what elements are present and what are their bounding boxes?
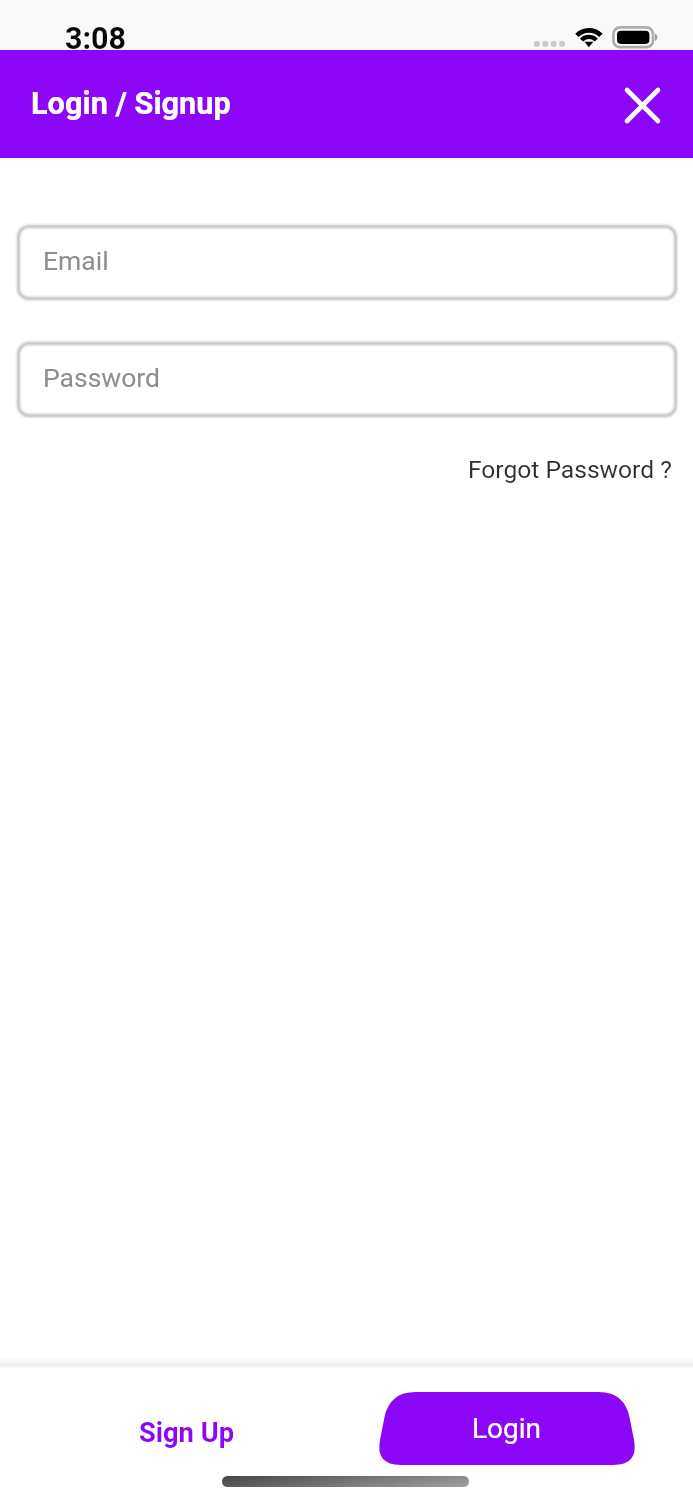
button[interactable]: Login: [375, 1392, 639, 1465]
staticText: 3:08: [65, 21, 127, 57]
button[interactable]: Sign Up: [123, 1406, 251, 1460]
button[interactable]: Email: [14, 222, 680, 303]
staticText: Forgot Password ?: [468, 455, 672, 484]
button[interactable]: Password: [14, 339, 680, 420]
staticText: Login / Signup: [31, 86, 231, 122]
button[interactable]: Forgot Password ?: [444, 445, 693, 496]
staticText: Password: [43, 362, 161, 393]
staticText: Email: [43, 245, 109, 276]
button[interactable]: Close: [616, 78, 668, 130]
staticText: Sign Up: [139, 1417, 235, 1449]
staticText: Login: [472, 1412, 542, 1445]
